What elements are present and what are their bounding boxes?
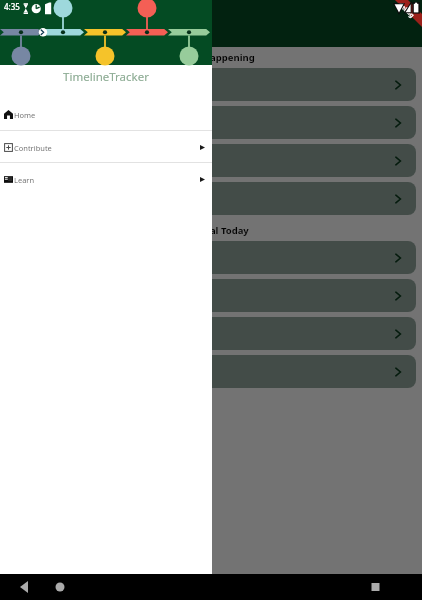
staticText: TimelineTracker bbox=[0, 69, 212, 85]
button[interactable]: Home bbox=[0, 98, 212, 131]
button[interactable] bbox=[6, 241, 416, 274]
staticText: debug bbox=[397, 0, 416, 20]
staticText: Historical Today bbox=[173, 224, 249, 237]
button[interactable] bbox=[6, 106, 416, 139]
staticText: Contribute bbox=[14, 143, 52, 153]
staticText: 4:35 bbox=[4, 1, 20, 12]
button[interactable] bbox=[6, 279, 416, 312]
staticText: What's Happening bbox=[168, 51, 255, 64]
button[interactable] bbox=[6, 317, 416, 350]
button[interactable] bbox=[6, 182, 416, 215]
button[interactable] bbox=[6, 144, 416, 177]
staticText: Home bbox=[14, 110, 36, 120]
staticText: Learn bbox=[14, 175, 35, 185]
button[interactable] bbox=[6, 355, 416, 388]
button[interactable]: Learn bbox=[0, 163, 212, 196]
button[interactable]: Contribute bbox=[0, 131, 212, 164]
button[interactable] bbox=[6, 68, 416, 101]
